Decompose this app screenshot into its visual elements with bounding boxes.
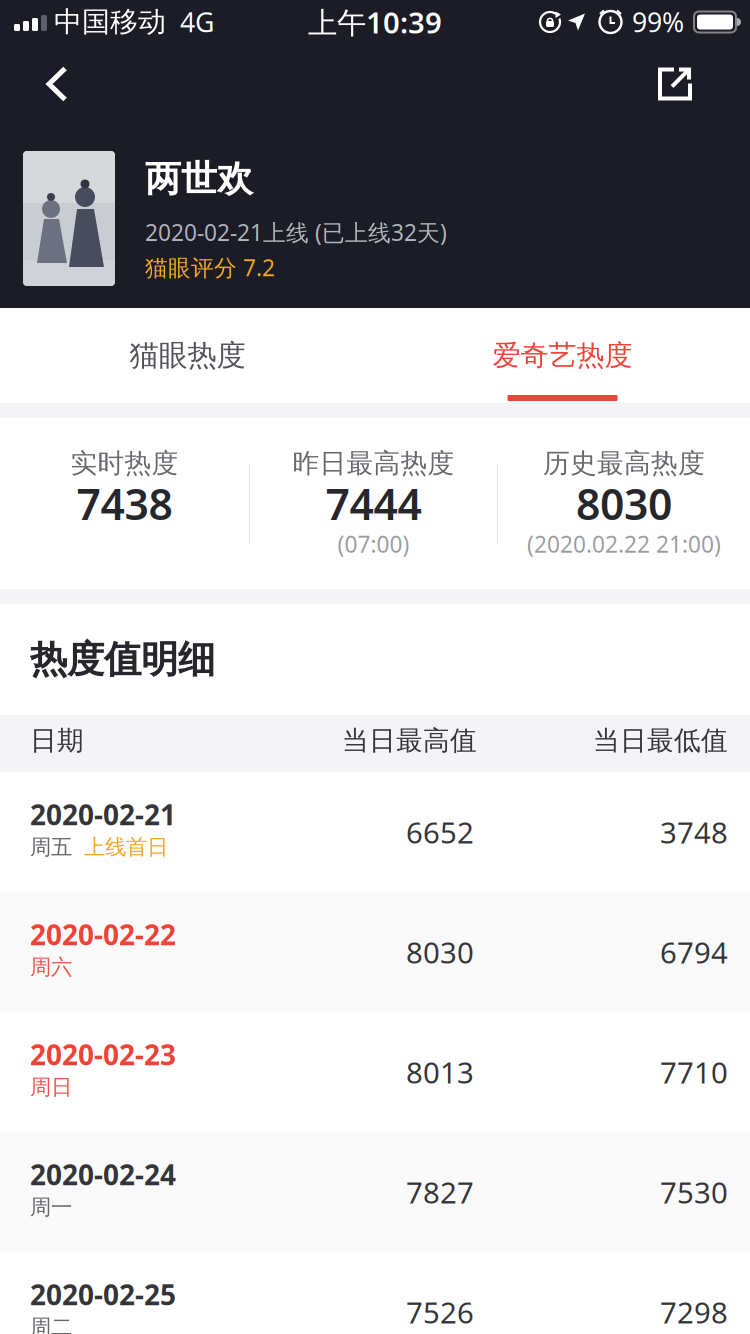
staticText: 7438 <box>76 475 172 532</box>
staticText: 2020-02-23 <box>30 1036 176 1073</box>
staticText: 2020-02-21上线 (已上线32天) <box>145 217 447 247</box>
staticText: (07:00) <box>337 529 409 559</box>
button[interactable]: 分享 <box>638 44 750 123</box>
staticText: 2020-02-25 <box>30 1276 176 1313</box>
staticText: 7827 <box>406 1172 474 1211</box>
staticText: 7526 <box>406 1292 474 1331</box>
staticText: 周二 <box>30 1314 72 1334</box>
staticText: 7530 <box>660 1172 728 1211</box>
staticText: 2020-02-22 <box>30 916 176 953</box>
staticText: 8030 <box>576 475 672 532</box>
staticText: 4G <box>180 4 214 40</box>
staticText: 上午10:39 <box>308 2 442 41</box>
staticText: 昨日最高热度 <box>292 447 454 480</box>
staticText: 两世欢 <box>145 157 253 201</box>
staticText: 当日最高值 <box>342 724 477 757</box>
staticText: 爱奇艺热度 <box>492 338 632 373</box>
staticText: 7710 <box>660 1052 728 1091</box>
staticText: 6794 <box>660 932 728 971</box>
staticText: 8013 <box>406 1052 474 1091</box>
staticText: 猫眼评分 7.2 <box>145 252 275 282</box>
button[interactable]: 猫眼热度 <box>0 308 375 403</box>
staticText: 日期 <box>30 724 84 757</box>
staticText: 6652 <box>406 812 474 851</box>
staticText: 99% <box>632 4 684 40</box>
staticText: 周一 <box>30 1194 72 1220</box>
staticText: 实时热度 <box>70 447 178 480</box>
staticText: 3748 <box>660 812 728 851</box>
staticText: 7444 <box>325 475 421 532</box>
staticText: 8030 <box>406 932 474 971</box>
staticText: 2020-02-24 <box>30 1156 176 1193</box>
staticText: 周六 <box>30 954 72 980</box>
staticText: 周五 <box>30 834 72 860</box>
button[interactable]: 爱奇艺热度 <box>375 308 750 403</box>
staticText: 7298 <box>660 1292 728 1331</box>
staticText: 上线首日 <box>84 834 168 860</box>
staticText: 猫眼热度 <box>129 337 245 373</box>
button[interactable]: 返回 <box>0 44 88 124</box>
staticText: 2020-02-21 <box>30 796 176 833</box>
staticText: (2020.02.22 21:00) <box>527 529 721 559</box>
staticText: 周日 <box>30 1074 72 1100</box>
staticText: 中国移动 <box>54 5 166 39</box>
staticText: 当日最低值 <box>593 724 728 757</box>
staticText: 历史最高热度 <box>543 447 705 480</box>
staticText: 热度值明细 <box>30 637 215 682</box>
